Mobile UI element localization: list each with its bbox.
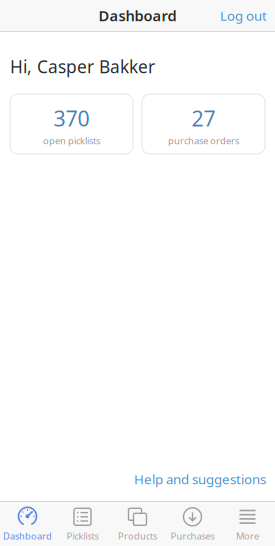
staticText: Dashboard (3, 530, 52, 542)
button[interactable]: More (220, 502, 275, 546)
staticText: Hi, Casper Bakker (10, 55, 155, 78)
button[interactable]: Log out (220, 7, 275, 24)
staticText: purchase orders (168, 134, 239, 147)
staticText: Picklists (66, 530, 98, 542)
button[interactable]: 370 (10, 94, 133, 154)
staticText: Log out (220, 7, 267, 24)
staticText: open picklists (43, 134, 100, 147)
button[interactable]: Products (110, 502, 165, 546)
button[interactable]: Purchases (165, 502, 220, 546)
staticText: 27 (191, 104, 215, 132)
button[interactable]: Picklists (55, 502, 110, 546)
staticText: More (236, 530, 259, 542)
button[interactable]: Help and suggestions (134, 470, 275, 488)
button[interactable]: Dashboard (0, 502, 55, 546)
staticText: Products (118, 530, 157, 542)
staticText: Dashboard (98, 6, 176, 25)
button[interactable]: 27 (142, 94, 265, 154)
staticText: Purchases (170, 530, 214, 542)
staticText: Help and suggestions (134, 470, 266, 488)
staticText: 370 (53, 104, 89, 132)
